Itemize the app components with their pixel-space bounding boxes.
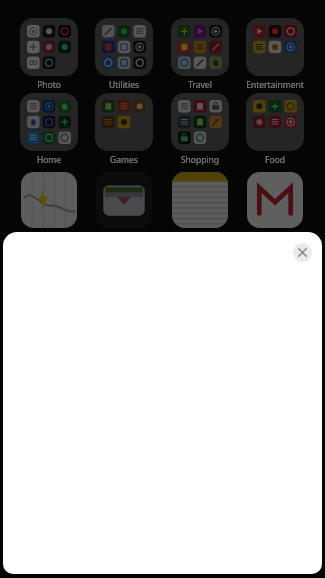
button[interactable]: Utilities	[87, 18, 161, 91]
staticText: Photo	[12, 79, 86, 91]
button[interactable]: Shopping	[163, 93, 237, 166]
staticText: Utilities	[87, 79, 161, 91]
button[interactable]: Gmail	[247, 172, 303, 228]
staticText: Games	[87, 154, 161, 166]
staticText: Travel	[163, 79, 237, 91]
button[interactable]: Wallet	[96, 172, 152, 228]
button[interactable]: Notes	[172, 172, 228, 228]
staticText: Entertainment	[238, 79, 312, 91]
button[interactable]: Games	[87, 93, 161, 166]
button[interactable]: Travel	[163, 18, 237, 91]
button[interactable]: Home	[12, 93, 86, 166]
button[interactable]: Stocks	[21, 172, 77, 228]
staticText: Shopping	[163, 154, 237, 166]
button[interactable]: Photo	[12, 18, 86, 91]
button[interactable]: Close	[293, 243, 312, 262]
button[interactable]: Food	[238, 93, 312, 166]
staticText: Home	[12, 154, 86, 166]
staticText: Food	[238, 154, 312, 166]
button[interactable]: Entertainment	[238, 18, 312, 91]
